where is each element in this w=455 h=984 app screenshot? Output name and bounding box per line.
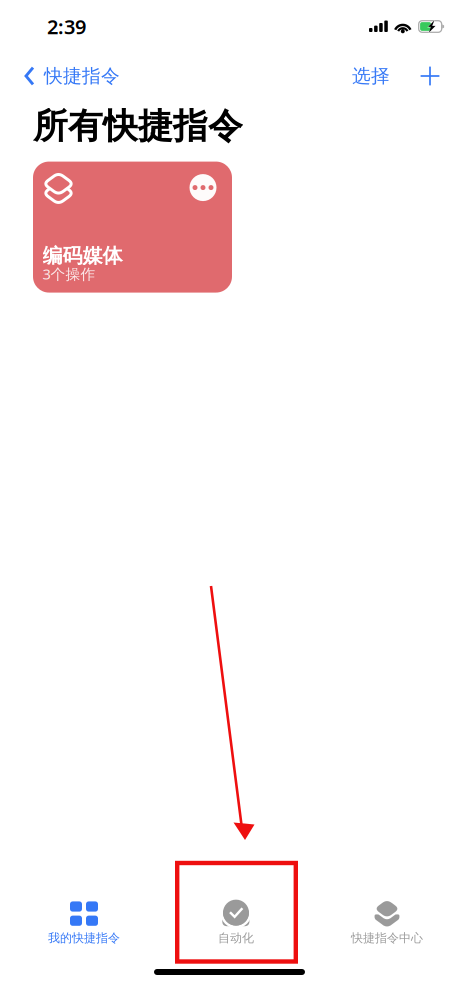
staticText: 所有快捷指令 xyxy=(33,105,243,148)
staticText: 快捷指令中心 xyxy=(351,931,423,945)
staticText: 快捷指令 xyxy=(44,64,120,87)
staticText: 编码媒体 xyxy=(42,243,122,268)
button[interactable]: Add shortcut xyxy=(398,61,440,91)
staticText: 2:39 xyxy=(47,13,86,40)
staticText: 自动化 xyxy=(218,931,254,945)
button[interactable]: 快捷指令 xyxy=(18,59,126,92)
staticText: 我的快捷指令 xyxy=(48,931,120,945)
button[interactable]: 编码媒体 xyxy=(33,162,232,293)
staticText: 选择 xyxy=(352,64,390,87)
button[interactable]: More options xyxy=(189,174,216,201)
button[interactable]: 自动化 xyxy=(171,891,301,953)
button[interactable]: 选择 xyxy=(344,59,398,92)
staticText: 3个操作 xyxy=(42,264,95,284)
button[interactable]: 我的快捷指令 xyxy=(19,891,149,953)
button[interactable]: 快捷指令中心 xyxy=(322,891,452,953)
